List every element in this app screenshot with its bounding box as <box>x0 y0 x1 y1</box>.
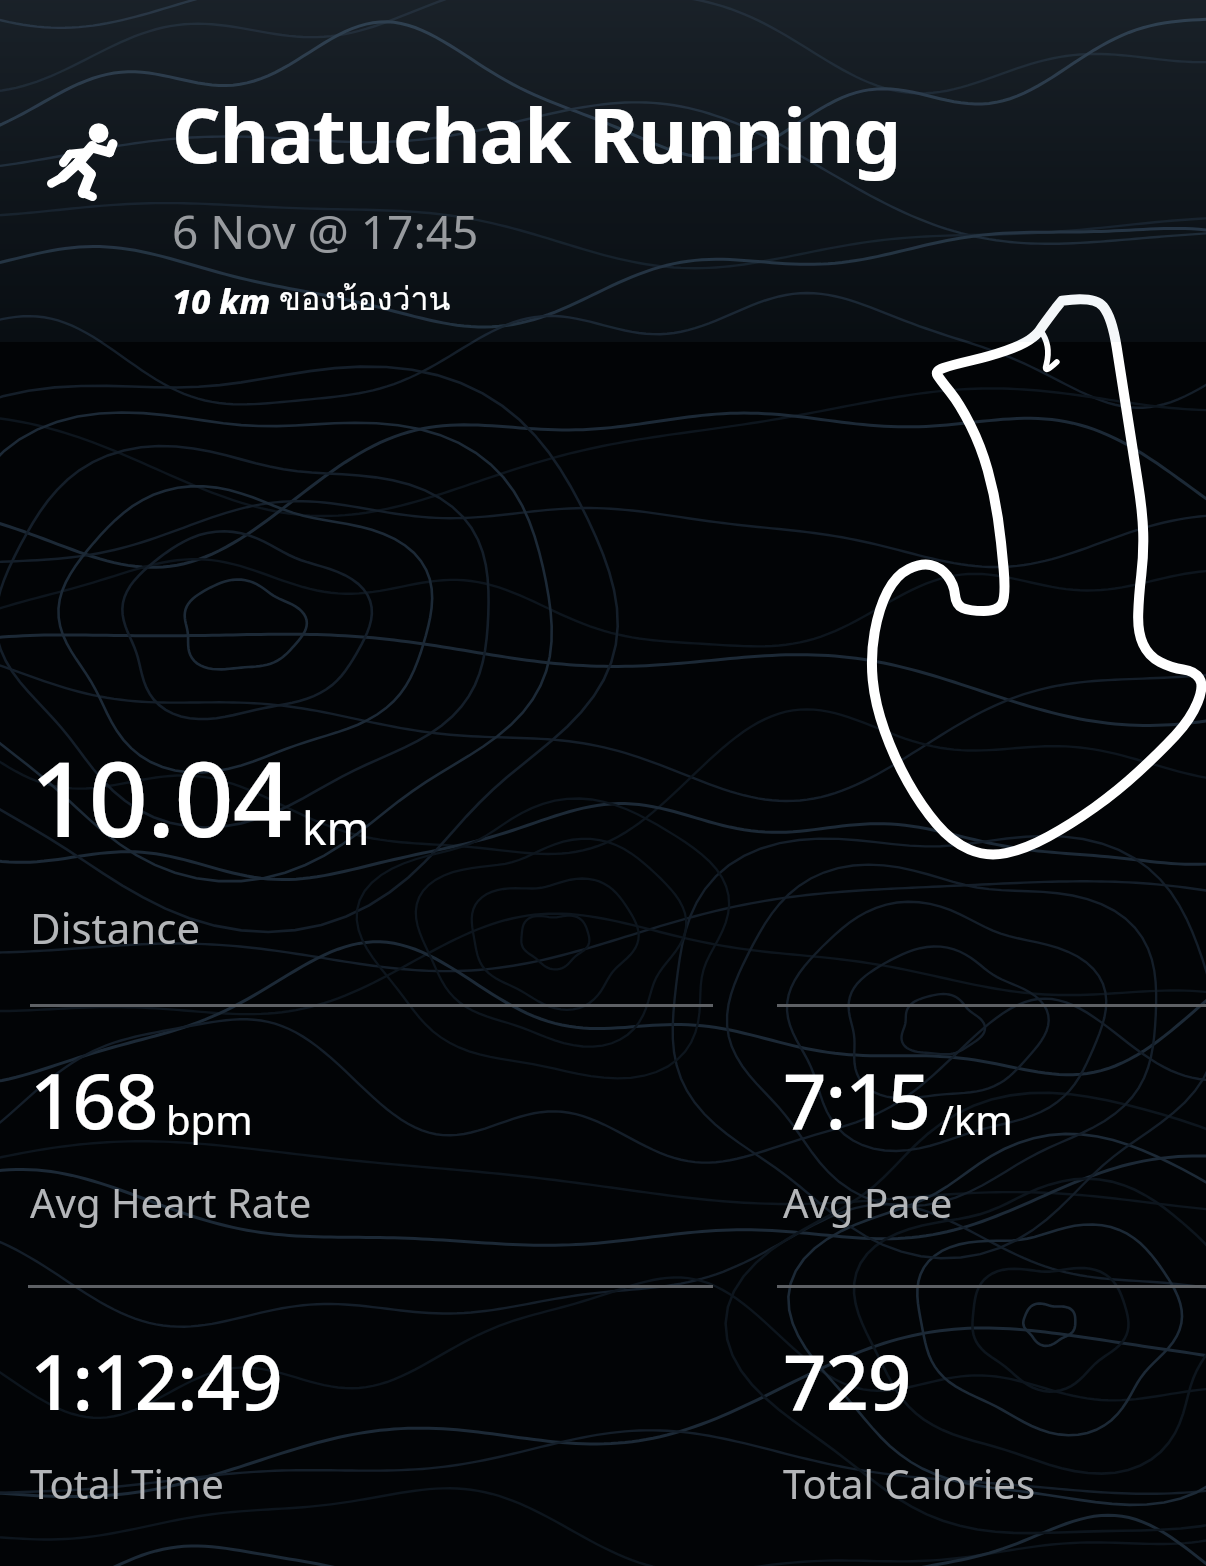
staticText: 729 <box>783 1329 911 1433</box>
staticText: Total Time <box>30 1456 224 1510</box>
staticText: Total Calories <box>783 1456 1036 1510</box>
staticText: /km <box>939 1092 1013 1146</box>
button[interactable]: 168 <box>30 1048 312 1229</box>
staticText: Chatuchak Running <box>172 82 901 186</box>
staticText: 1:12:49 <box>30 1329 282 1433</box>
button[interactable]: 729 <box>783 1329 1036 1510</box>
other: Running activity <box>44 118 130 204</box>
staticText: Avg Heart Rate <box>30 1175 312 1229</box>
button[interactable]: 1:12:49 <box>30 1329 282 1510</box>
staticText: ของน้องว่าน <box>279 273 451 324</box>
button[interactable]: 10.04 <box>30 726 370 956</box>
staticText: Distance <box>30 899 201 956</box>
button[interactable]: 7:15 <box>783 1048 1013 1229</box>
staticText: 10 km <box>172 278 271 324</box>
staticText: Avg Pace <box>783 1175 953 1229</box>
staticText: 7:15 <box>783 1048 931 1152</box>
staticText: bpm <box>166 1092 253 1146</box>
staticText: 168 <box>30 1048 158 1152</box>
staticText: 6 Nov @ 17:45 <box>172 200 479 263</box>
staticText: 10.04 <box>30 726 292 868</box>
staticText: km <box>302 796 370 859</box>
